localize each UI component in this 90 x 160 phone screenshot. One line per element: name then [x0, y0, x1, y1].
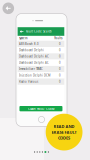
staticText: ERASE FAULT [52, 129, 77, 135]
staticText: Dashboard Delphi AC [19, 55, 49, 58]
staticText: 0 [59, 48, 61, 52]
staticText: 0 [59, 80, 61, 83]
staticText: ABS Bosch 8.0 [19, 42, 39, 46]
button[interactable]: Back [2, 2, 15, 15]
staticText: Immobilizer TEMIC [19, 67, 43, 71]
button[interactable]: CLEAR FAULT CODES [19, 106, 62, 111]
staticText: Injection Delphi DCM [19, 74, 50, 77]
staticText: 0 [59, 42, 61, 46]
staticText: CLEAR FAULT CODES [28, 107, 54, 110]
staticText: Fault Code Search [26, 30, 52, 33]
staticText: CODES [58, 135, 70, 140]
staticText: System [19, 36, 28, 40]
staticText: READ AND [54, 124, 75, 129]
staticText: 0 [59, 74, 61, 77]
staticText: 0 [59, 61, 61, 64]
staticText: 0 [59, 55, 61, 58]
staticText: Dashboard Delphi [19, 48, 44, 52]
staticText: Faults [54, 36, 62, 40]
staticText: Radio Various [19, 80, 38, 83]
staticText: 0 [59, 67, 61, 71]
button[interactable]: Back [19, 27, 24, 36]
staticText: Dashboard Delphi AC [19, 61, 49, 64]
